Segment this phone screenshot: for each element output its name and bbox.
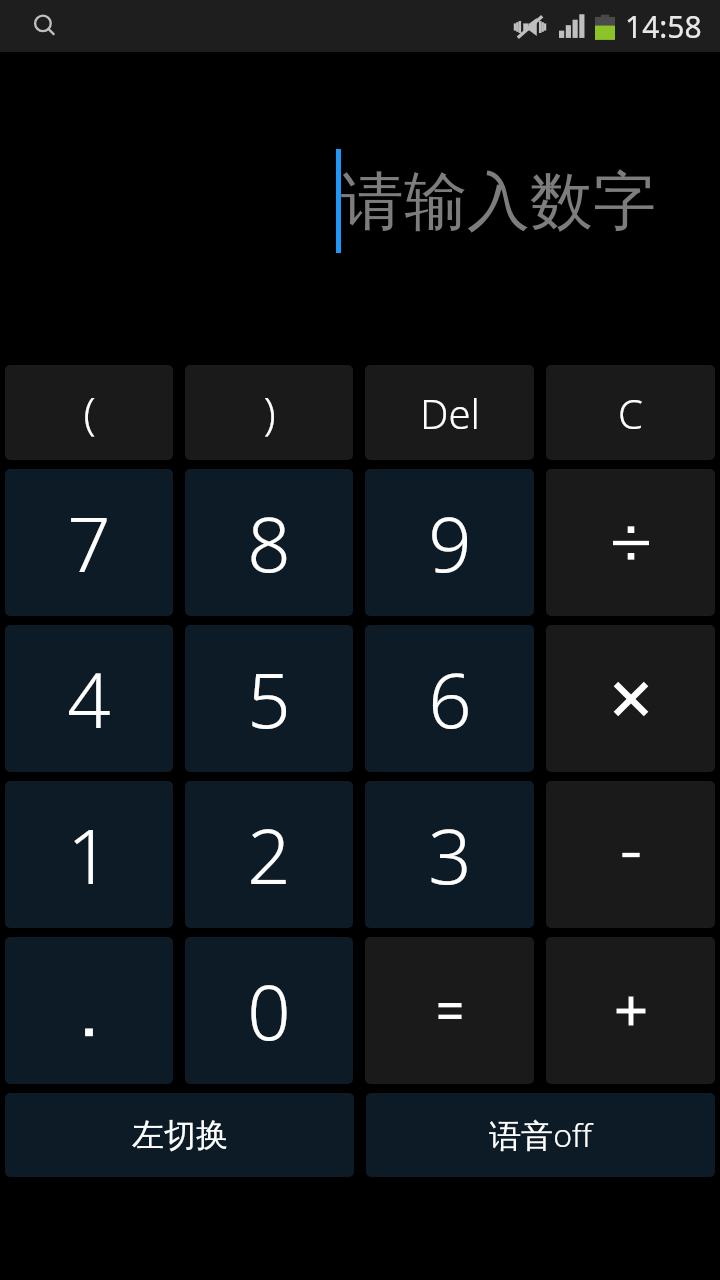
button[interactable]: (	[5, 365, 173, 460]
staticText: 14:58	[625, 6, 702, 47]
staticText: 5	[247, 647, 291, 751]
button[interactable]: Plus	[546, 937, 715, 1084]
staticText: 语音off	[489, 1113, 592, 1157]
button[interactable]: 6	[365, 625, 534, 772]
staticText: C	[618, 386, 643, 440]
staticText: 1	[67, 803, 111, 907]
button[interactable]: Multiply	[546, 625, 715, 772]
button[interactable]: Decimal point	[5, 937, 173, 1084]
button[interactable]: Del	[365, 365, 534, 460]
button[interactable]: 左切换	[5, 1093, 354, 1177]
button[interactable]: Divide	[546, 469, 715, 616]
staticText: 0	[247, 959, 291, 1063]
button[interactable]: 9	[365, 469, 534, 616]
staticText: 请输入数字	[341, 162, 656, 241]
button[interactable]: 1	[5, 781, 173, 928]
button[interactable]: 5	[185, 625, 353, 772]
button[interactable]: Search	[30, 11, 60, 41]
button[interactable]: 0	[185, 937, 353, 1084]
staticText: 7	[67, 491, 111, 595]
staticText: )	[263, 383, 276, 443]
button[interactable]: C	[546, 365, 715, 460]
button[interactable]: 3	[365, 781, 534, 928]
staticText: 8	[247, 491, 291, 595]
button[interactable]: 语音off	[366, 1093, 715, 1177]
button[interactable]: Equals	[365, 937, 534, 1084]
staticText: Del	[420, 386, 480, 440]
button[interactable]: 2	[185, 781, 353, 928]
button[interactable]: 4	[5, 625, 173, 772]
staticText: 左切换	[132, 1115, 228, 1155]
button[interactable]: 7	[5, 469, 173, 616]
button[interactable]: 8	[185, 469, 353, 616]
staticText: 4	[67, 647, 111, 751]
staticText: 9	[428, 491, 472, 595]
staticText: 3	[428, 803, 472, 907]
button[interactable]: Minus	[546, 781, 715, 928]
staticText: 6	[428, 647, 472, 751]
staticText: 2	[247, 803, 291, 907]
staticText: (	[83, 383, 96, 443]
button[interactable]: )	[185, 365, 353, 460]
